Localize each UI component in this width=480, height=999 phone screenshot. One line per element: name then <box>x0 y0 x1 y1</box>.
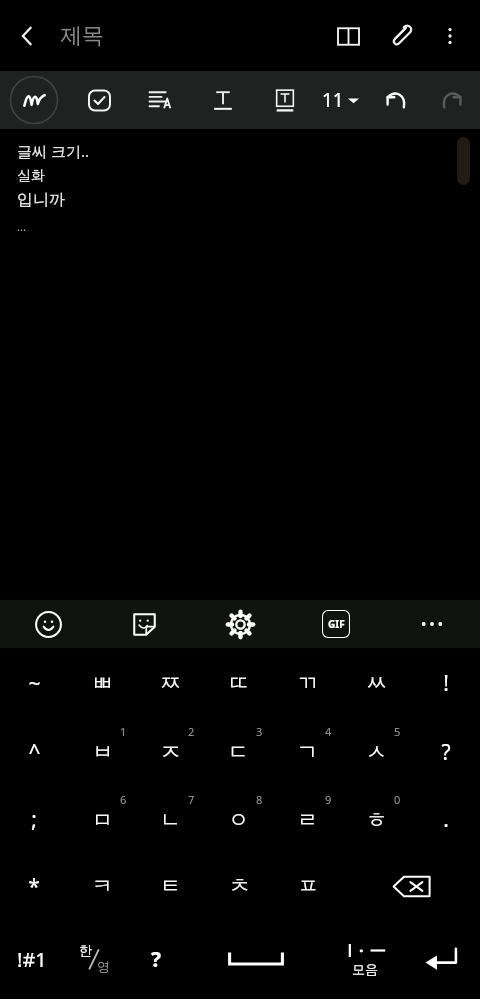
button[interactable]: ㄷ <box>204 718 273 786</box>
button[interactable]: ㄲ <box>273 648 342 718</box>
button[interactable]: !#1 <box>0 919 63 999</box>
button[interactable]: Text style <box>192 71 254 129</box>
staticText: 9 <box>325 792 332 807</box>
staticText: ㅈ <box>160 739 181 765</box>
button[interactable]: Stickers <box>96 600 192 648</box>
staticText: ~ <box>28 669 41 698</box>
button[interactable]: Back <box>0 9 54 63</box>
button[interactable]: Enter <box>405 919 480 999</box>
staticText: * <box>28 872 40 901</box>
button[interactable]: Undo <box>368 71 424 129</box>
button[interactable]: ㅎ <box>342 786 411 853</box>
button[interactable]: Checklist <box>68 71 130 129</box>
button[interactable]: ㅌ <box>136 853 205 919</box>
staticText: ㄹ <box>297 807 318 833</box>
staticText: 입니까 <box>17 190 65 210</box>
button[interactable]: ㅊ <box>205 853 274 919</box>
button[interactable]: ㅉ <box>136 648 204 718</box>
staticText: 11 <box>322 87 344 113</box>
staticText: 영 <box>97 958 110 974</box>
staticText: ㅇ <box>228 807 249 833</box>
button[interactable]: ㅇ <box>204 786 273 853</box>
button[interactable]: Redo <box>424 71 480 129</box>
staticText: GIF <box>328 617 345 631</box>
staticText: ... <box>17 219 26 234</box>
staticText: ; <box>31 805 37 834</box>
staticText: ? <box>441 738 451 767</box>
button[interactable]: ! <box>411 648 480 718</box>
button[interactable]: ㄴ <box>136 786 204 853</box>
button[interactable]: . <box>411 786 480 853</box>
button[interactable]: Keyboard settings <box>192 600 288 648</box>
staticText: ㅊ <box>229 873 250 899</box>
button[interactable]: Paragraph alignment <box>130 71 192 129</box>
button[interactable]: 제목 <box>60 22 104 50</box>
button[interactable]: Backspace <box>343 853 480 919</box>
staticText: 0 <box>394 792 401 807</box>
staticText: ㅉ <box>160 670 181 696</box>
staticText: ㄴ <box>160 807 181 833</box>
button[interactable]: ㅈ <box>136 718 204 786</box>
button[interactable]: More options <box>426 12 474 60</box>
staticText: 2 <box>188 724 195 739</box>
staticText: ㅁ <box>92 807 113 833</box>
button[interactable]: ㅆ <box>342 648 411 718</box>
button[interactable]: More <box>384 600 480 648</box>
staticText: 실화 <box>17 167 45 185</box>
staticText: ㄸ <box>228 670 249 696</box>
button[interactable]: ㅋ <box>68 853 136 919</box>
button[interactable]: ㅃ <box>68 648 136 718</box>
button[interactable]: ㅅ <box>342 718 411 786</box>
staticText: ㅎ <box>366 807 387 833</box>
staticText: ㅂ <box>92 739 113 765</box>
staticText: 한 <box>79 942 92 958</box>
button[interactable]: Korean English toggle <box>63 919 125 999</box>
button[interactable]: * <box>0 853 68 919</box>
staticText: 7 <box>188 792 195 807</box>
button[interactable]: ? <box>125 919 187 999</box>
staticText: ㄲ <box>297 670 318 696</box>
button[interactable]: ? <box>411 718 480 786</box>
staticText: ㅃ <box>92 670 113 696</box>
staticText: ㅌ <box>160 873 181 899</box>
staticText: 5 <box>394 724 401 739</box>
staticText: 3 <box>256 724 263 739</box>
button[interactable]: Vowel <box>324 919 405 999</box>
button[interactable]: ㅂ <box>68 718 136 786</box>
button[interactable]: Attach <box>374 10 426 62</box>
staticText: 모음 <box>352 961 378 977</box>
staticText: ㄷ <box>228 739 249 765</box>
staticText: ㄱ <box>297 739 318 765</box>
button[interactable]: Reading mode <box>322 10 374 62</box>
button[interactable]: Space <box>187 919 324 999</box>
button[interactable]: 11 <box>322 71 359 129</box>
button[interactable]: Emoji <box>0 600 96 648</box>
staticText: ? <box>151 945 162 974</box>
staticText: 1 <box>120 724 127 739</box>
staticText: . <box>443 805 449 834</box>
staticText: ㅍ <box>298 873 319 899</box>
staticText: !#1 <box>17 946 47 973</box>
button[interactable]: ㄹ <box>273 786 342 853</box>
button[interactable]: ㄱ <box>273 718 342 786</box>
staticText: 6 <box>120 792 127 807</box>
staticText: ㅋ <box>92 873 113 899</box>
button[interactable]: ㅁ <box>68 786 136 853</box>
staticText: 4 <box>325 724 332 739</box>
staticText: ㅆ <box>366 670 387 696</box>
button[interactable]: ^ <box>0 718 68 786</box>
staticText: ! <box>443 669 449 698</box>
button[interactable]: Pen <box>0 71 68 129</box>
button[interactable]: ㄸ <box>204 648 273 718</box>
button[interactable]: ; <box>0 786 68 853</box>
button[interactable]: ~ <box>0 648 68 718</box>
staticText: 글씨 크기.. <box>17 141 89 161</box>
button[interactable]: GIF <box>288 600 384 648</box>
button[interactable]: ㅍ <box>274 853 343 919</box>
staticText: 8 <box>256 792 263 807</box>
button[interactable]: Text box <box>254 71 316 129</box>
staticText: ㅅ <box>366 739 387 765</box>
staticText: ^ <box>28 738 41 767</box>
